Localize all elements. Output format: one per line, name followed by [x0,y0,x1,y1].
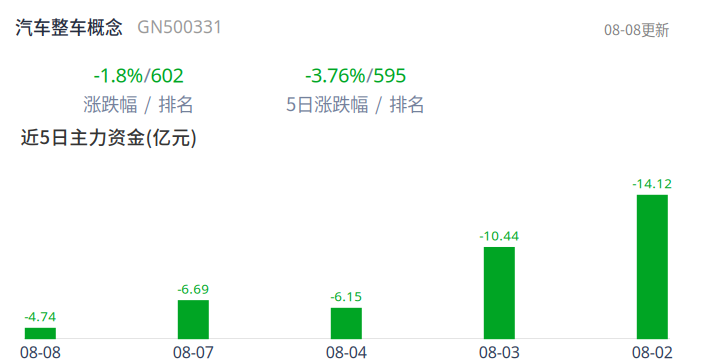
staticText: -6.69 [177,280,209,297]
staticText: 08-02 [632,341,673,362]
staticText: -3.76% [305,61,366,88]
staticText: 08-07 [173,341,214,362]
staticText: 08-08 [20,341,61,362]
staticText: -6.15 [330,287,362,305]
staticText: -1.8% [93,61,143,88]
button[interactable]: -3.76% [235,61,475,117]
staticText: -4.74 [24,307,56,325]
staticText: 排名 [158,90,194,117]
staticText: -10.44 [479,226,519,244]
staticText: 涨跌幅 [83,90,137,117]
staticText: GN500331 [137,15,223,38]
staticText: 排名 [389,90,425,117]
staticText: 08-04 [326,341,367,362]
staticText: / [144,90,151,117]
staticText: / [143,61,150,88]
staticText: 汽车整车概念 [15,14,123,39]
staticText: 近5日主力资金(亿元) [20,123,197,150]
staticText: / [375,90,382,117]
staticText: 5日涨跌幅 [286,90,368,117]
staticText: / [366,61,373,88]
staticText: 08-03 [479,341,520,362]
button[interactable]: 汽车整车概念 [15,14,223,39]
staticText: -14.12 [632,174,672,192]
staticText: 595 [373,61,406,88]
button[interactable]: -1.8% [18,61,258,117]
staticText: 08-08更新 [604,19,669,39]
staticText: 602 [150,61,183,88]
